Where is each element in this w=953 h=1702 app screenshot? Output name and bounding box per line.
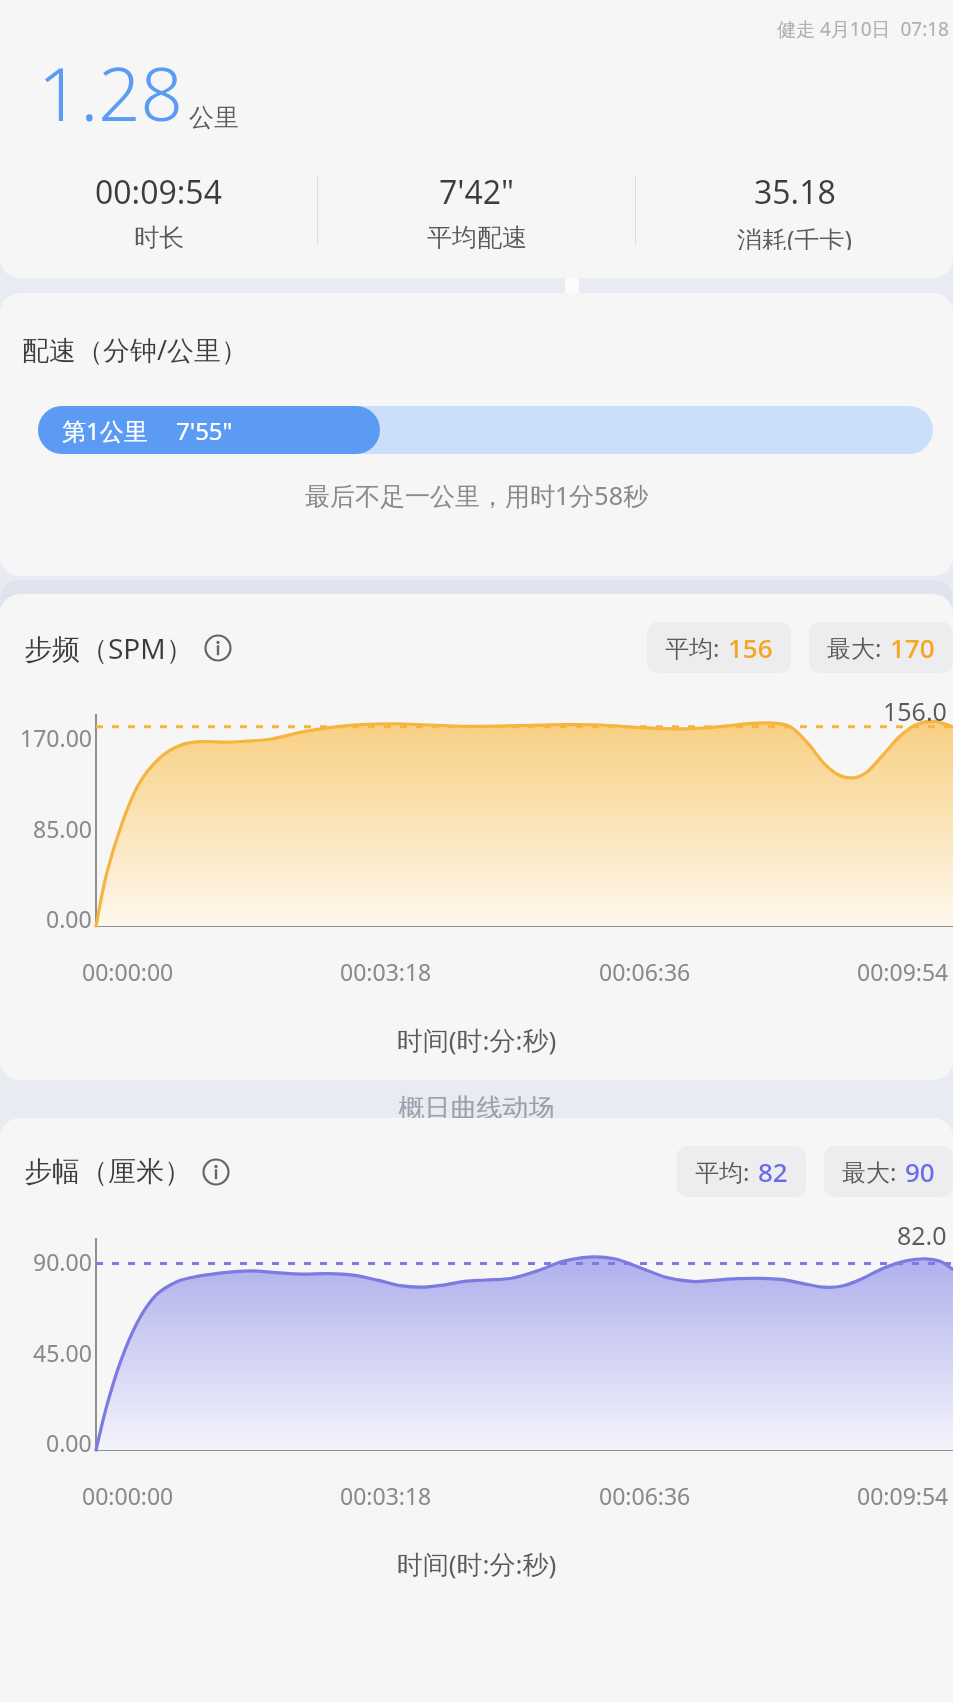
staticText: 85.00: [33, 813, 92, 844]
staticText: 00:00:00: [82, 956, 174, 987]
staticText: 最大:: [827, 631, 882, 664]
staticText: 时间(时:分:秒): [0, 1022, 953, 1058]
staticText: 170: [890, 630, 935, 665]
staticText: 最后不足一公里，用时1分58秒: [0, 478, 953, 512]
staticText: 35.18: [754, 170, 836, 214]
staticText: 步幅（厘米）: [24, 1154, 192, 1189]
staticText: 概日曲线动场: [0, 1092, 953, 1125]
staticText: 156.0: [883, 694, 947, 728]
button[interactable]: 7'42": [318, 170, 635, 250]
button[interactable]: 35.18: [636, 170, 953, 250]
button[interactable]: 平均:: [677, 1146, 806, 1197]
staticText: 7'55": [176, 414, 233, 447]
staticText: 00:09:54: [857, 1480, 949, 1511]
button[interactable]: 最大:: [809, 622, 953, 673]
button[interactable]: 平均:: [647, 622, 791, 673]
button[interactable]: 00:09:54: [0, 170, 317, 250]
staticText: 170.00: [20, 722, 92, 753]
staticText: 步频（SPM）: [24, 629, 194, 667]
staticText: 156: [728, 630, 773, 665]
staticText: 82.0: [897, 1218, 947, 1252]
staticText: 90.00: [33, 1246, 92, 1277]
staticText: 时间(时:分:秒): [0, 1546, 953, 1582]
staticText: 00:03:18: [340, 1480, 432, 1511]
staticText: 00:06:36: [599, 956, 691, 987]
staticText: 00:03:18: [340, 956, 432, 987]
staticText: 00:00:00: [82, 1480, 174, 1511]
staticText: 第1公里: [62, 414, 148, 447]
staticText: 公里: [189, 102, 239, 133]
staticText: 00:06:36: [599, 1480, 691, 1511]
staticText: 平均:: [695, 1155, 750, 1188]
staticText: 00:09:54: [95, 170, 222, 214]
button[interactable]: 步幅（厘米）: [0, 1118, 953, 1702]
staticText: 平均配速: [427, 222, 527, 250]
staticText: 7'42": [439, 170, 515, 214]
staticText: 00:09:54: [857, 956, 949, 987]
staticText: 时长: [134, 222, 184, 250]
staticText: 0.00: [46, 1427, 92, 1458]
staticText: 配速（分钟/公里）: [22, 331, 249, 368]
button[interactable]: 步频（SPM）: [0, 594, 953, 1080]
staticText: 健走 4月10日 07:18: [777, 16, 949, 42]
staticText: 90: [905, 1154, 935, 1189]
button[interactable]: 最大:: [824, 1146, 953, 1197]
staticText: 82: [758, 1154, 788, 1189]
staticText: 最大:: [842, 1155, 897, 1188]
button[interactable]: 健走 4月10日 07:18: [0, 0, 953, 278]
button[interactable]: 信息: [204, 634, 232, 662]
staticText: 45.00: [33, 1337, 92, 1368]
staticText: 平均:: [665, 631, 720, 664]
staticText: 消耗(千卡): [737, 222, 853, 250]
staticText: 1.28: [38, 42, 183, 143]
button[interactable]: 第1公里: [38, 406, 380, 454]
staticText: 0.00: [46, 903, 92, 934]
button[interactable]: 信息: [202, 1158, 230, 1186]
button[interactable]: 配速（分钟/公里）: [0, 293, 953, 576]
